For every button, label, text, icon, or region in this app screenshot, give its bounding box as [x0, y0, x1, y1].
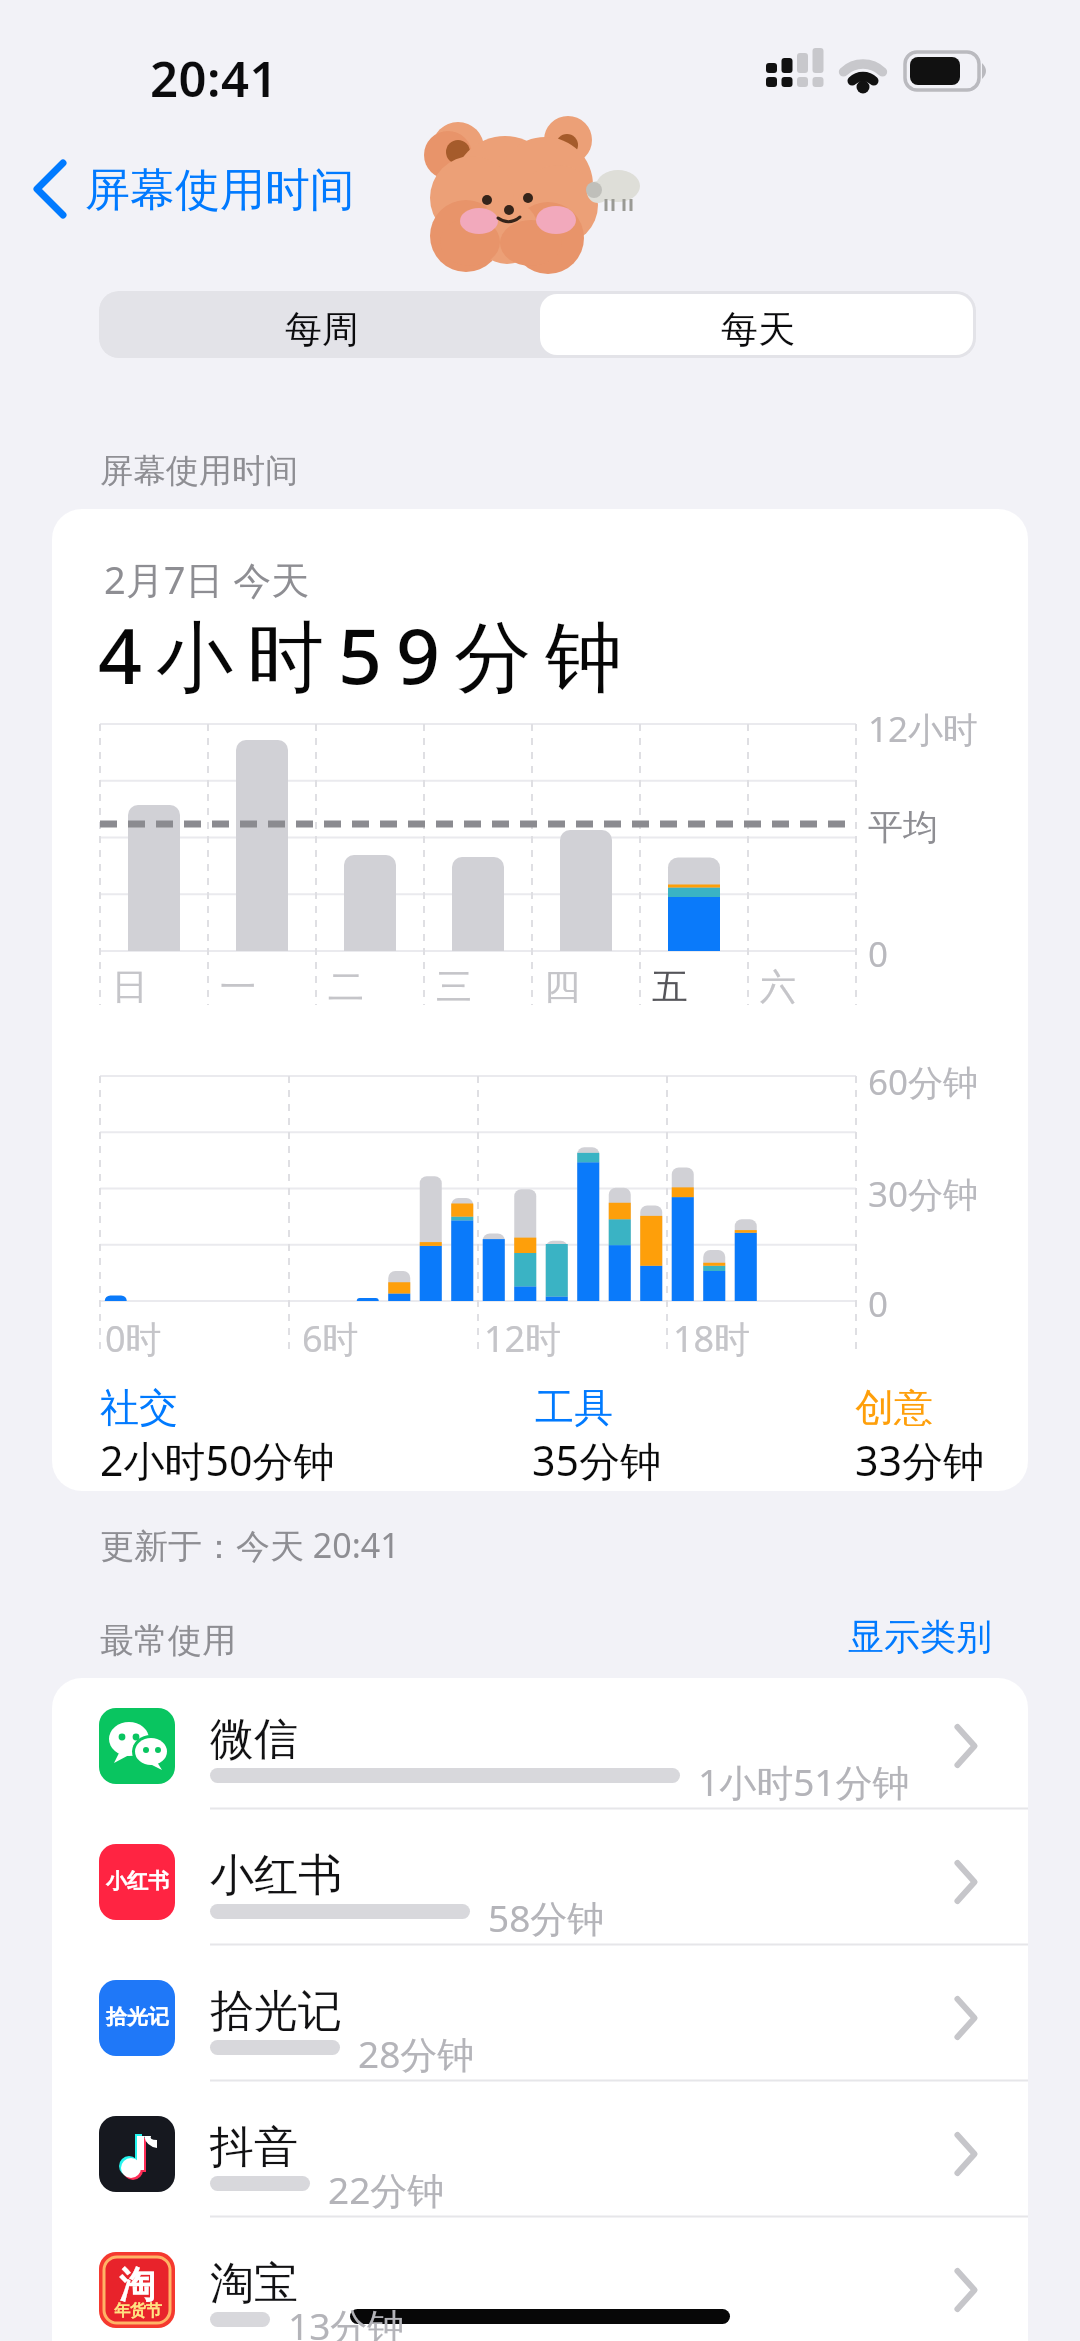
staticText: 平均: [868, 805, 938, 849]
staticText: 显示类别: [848, 1614, 992, 1659]
button[interactable]: [52, 1962, 1028, 2098]
staticText: 12小时: [868, 705, 979, 753]
staticText: 四: [544, 964, 580, 1009]
staticText: 社交: [100, 1383, 178, 1432]
staticText: 33分钟: [855, 1432, 984, 1488]
staticText: 六: [760, 964, 796, 1009]
staticText: 日: [112, 964, 148, 1009]
staticText: 抖音: [210, 2120, 298, 2175]
button[interactable]: [52, 2098, 1028, 2234]
staticText: 1小时51分钟: [698, 1756, 910, 1807]
staticText: 五: [652, 964, 688, 1009]
button[interactable]: [52, 1690, 1028, 1826]
staticText: 年货节: [114, 2301, 162, 2321]
staticText: 35分钟: [532, 1432, 661, 1488]
button[interactable]: [52, 1826, 1028, 1962]
staticText: 12时: [484, 1314, 562, 1363]
staticText: 创意: [855, 1383, 933, 1432]
staticText: 0时: [105, 1314, 162, 1363]
staticText: 13分钟: [288, 2300, 405, 2341]
staticText: 4小时59分钟: [98, 602, 637, 707]
button[interactable]: [845, 1605, 985, 1665]
staticText: 微信: [210, 1712, 298, 1767]
staticText: 屏幕使用时间: [100, 450, 298, 492]
staticText: 拾光记: [106, 2004, 169, 2030]
staticText: 一: [220, 964, 256, 1009]
staticText: 60分钟: [868, 1058, 979, 1106]
staticText: 屏幕使用时间: [85, 162, 355, 219]
staticText: 22分钟: [328, 2164, 445, 2215]
staticText: 小红书: [106, 1868, 169, 1894]
staticText: 30分钟: [868, 1170, 979, 1218]
staticText: 更新于：今天 20:41: [100, 1522, 400, 1568]
staticText: 小红书: [210, 1848, 342, 1903]
button[interactable]: [30, 155, 360, 225]
staticText: 18时: [673, 1314, 751, 1363]
staticText: 工具: [535, 1383, 613, 1432]
staticText: 28分钟: [358, 2028, 475, 2079]
staticText: 淘: [119, 2262, 155, 2307]
staticText: 20:41: [150, 45, 279, 112]
button[interactable]: [99, 291, 537, 358]
staticText: 二: [328, 964, 364, 1009]
staticText: 每天: [721, 306, 795, 353]
staticText: 淘宝: [210, 2256, 298, 2311]
staticText: 2月7日 今天: [104, 553, 310, 605]
staticText: 每周: [285, 306, 359, 353]
staticText: 2小时50分钟: [100, 1432, 335, 1488]
staticText: 0: [868, 1280, 889, 1328]
staticText: 最常使用: [100, 1619, 236, 1662]
staticText: 6时: [302, 1314, 359, 1363]
staticText: 三: [436, 964, 472, 1009]
staticText: 拾光记: [210, 1984, 342, 2039]
staticText: 58分钟: [488, 1892, 605, 1943]
button[interactable]: [540, 294, 973, 355]
staticText: 0: [868, 930, 889, 978]
button[interactable]: [52, 2234, 1028, 2341]
